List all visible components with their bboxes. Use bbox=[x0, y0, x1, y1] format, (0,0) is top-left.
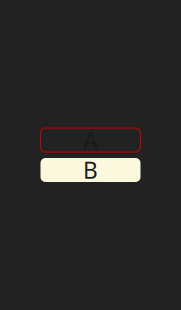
staticText: A bbox=[83, 125, 97, 155]
staticText: B bbox=[83, 155, 98, 185]
